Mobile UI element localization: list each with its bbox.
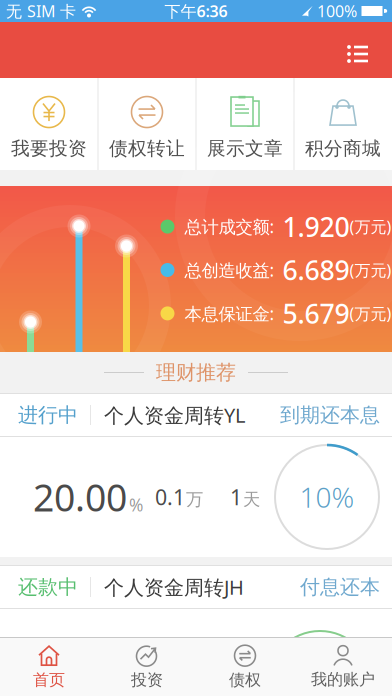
staticText: 个人资金周转JH xyxy=(104,574,244,600)
staticText: 到期还本息 xyxy=(280,403,380,427)
button[interactable]: 更多 xyxy=(347,44,392,63)
staticText: 债权 xyxy=(229,670,261,690)
staticText: 展示文章 xyxy=(207,137,283,160)
staticText: 无 SIM 卡 xyxy=(6,0,76,22)
button[interactable]: 投资 xyxy=(98,638,196,696)
staticText: 0.1 xyxy=(155,483,185,511)
button[interactable]: 债权 xyxy=(196,638,294,696)
staticText: 首页 xyxy=(33,670,65,690)
staticText: 本息保证金: xyxy=(184,302,274,325)
staticText: 总计成交额: xyxy=(184,215,274,238)
staticText: % xyxy=(129,493,143,516)
staticText: 债权转让 xyxy=(109,137,185,160)
staticText: 积分商城 xyxy=(305,137,381,160)
button[interactable]: 还款中 xyxy=(0,565,392,609)
staticText: 还款中 xyxy=(18,575,78,599)
button[interactable]: 展示文章 xyxy=(196,78,293,170)
staticText: 6.689 xyxy=(282,252,349,288)
staticText: 100% xyxy=(317,0,357,22)
staticText: 1.920 xyxy=(282,209,349,244)
button[interactable]: 进行中 xyxy=(0,393,392,437)
staticText: (万元) xyxy=(349,303,391,324)
staticText: 进行中 xyxy=(18,403,78,427)
button[interactable]: 首页 xyxy=(0,638,98,696)
staticText: 下午6:36 xyxy=(164,0,227,22)
staticText: 投资 xyxy=(131,670,163,690)
button[interactable]: 20.00 xyxy=(0,437,392,557)
staticText: 10% xyxy=(299,478,354,516)
button[interactable]: 积分商城 xyxy=(294,78,391,170)
staticText: 1 xyxy=(230,483,242,511)
staticText: 我要投资 xyxy=(11,137,87,160)
button[interactable]: 我要投资 xyxy=(0,78,97,170)
staticText: 付息还本 xyxy=(300,575,380,599)
staticText: (万元) xyxy=(349,259,391,281)
staticText: 理财推荐 xyxy=(156,360,236,385)
staticText: 5.679 xyxy=(282,296,349,331)
staticText: 我的账户 xyxy=(311,670,375,689)
staticText: 万 xyxy=(186,489,203,510)
staticText: (万元) xyxy=(349,216,391,237)
staticText: 天 xyxy=(243,489,260,510)
staticText: 总创造收益: xyxy=(184,258,274,281)
button[interactable]: 债权转让 xyxy=(98,78,195,170)
staticText: 个人资金周转YL xyxy=(104,402,245,428)
button[interactable]: 我的账户 xyxy=(294,638,392,696)
staticText: 20.00 xyxy=(33,472,127,522)
